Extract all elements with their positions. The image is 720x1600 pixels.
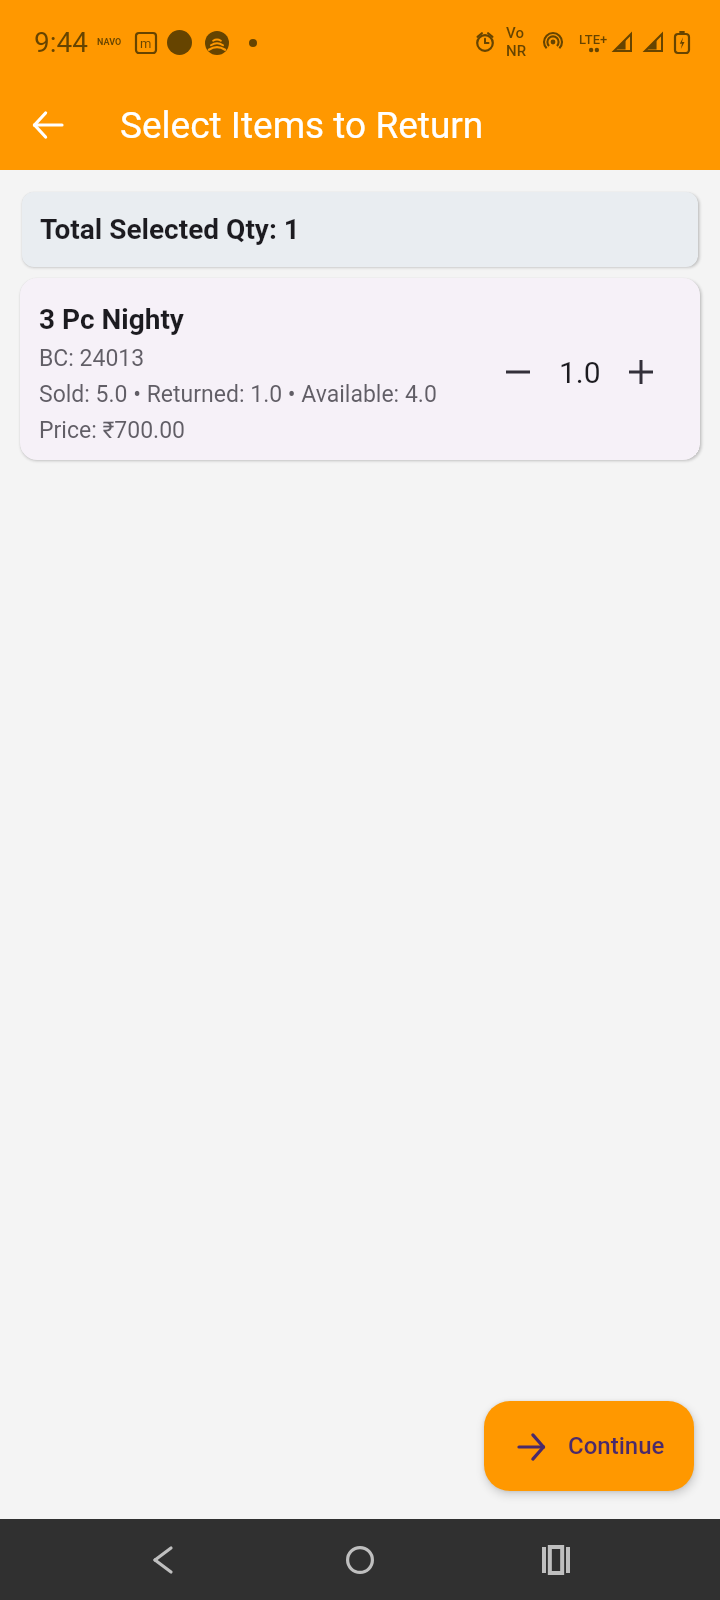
button[interactable]: Decrease quantity [496,350,540,394]
staticText: NR [506,42,527,60]
button[interactable]: Back [123,1520,203,1600]
staticText: Vo [506,24,524,42]
button[interactable]: 3 Pc Nighty [20,278,700,460]
button[interactable]: Continue [484,1401,694,1491]
staticText: Sold: 5.0 • Returned: 1.0 • Available: 4… [39,381,437,408]
staticText: 1.0 [559,355,601,390]
staticText: m [140,36,152,51]
staticText: BC: 24013 [39,345,145,372]
button[interactable]: Increase quantity [619,350,663,394]
staticText: NAVO [97,37,122,48]
staticText: 9:44 [34,26,88,59]
button[interactable]: Recent apps [516,1520,596,1600]
staticText: Total Selected Qty: 1 [40,213,300,246]
button[interactable]: Back [16,93,80,157]
button[interactable]: Home [320,1520,400,1600]
staticText: Select Items to Return [120,104,484,147]
button[interactable]: Total Selected Qty: 1 [22,192,698,267]
staticText: Price: ₹700.00 [39,417,185,444]
staticText: LTE+ [579,32,608,47]
staticText: 3 Pc Nighty [39,303,184,336]
staticText: Continue [568,1432,665,1460]
